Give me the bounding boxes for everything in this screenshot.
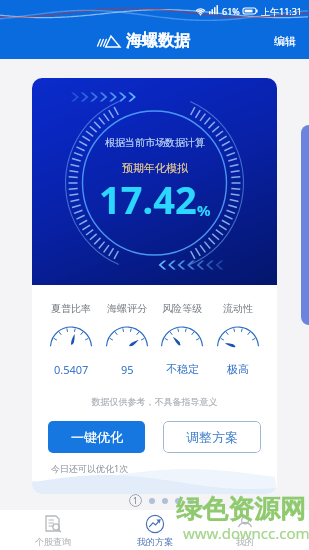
staticText: 根据当前市场数据计算 <box>105 136 205 149</box>
button[interactable]: 调整方案 <box>163 421 261 453</box>
staticText: 个股查询 <box>35 536 71 547</box>
staticText: 数据仅供参考，不具备指导意义 <box>32 396 277 407</box>
staticText: 绿色资源网 <box>176 493 306 526</box>
staticText: 风险等级 <box>162 302 202 315</box>
staticText: 我的方案 <box>137 536 173 547</box>
staticText: 上午11:31 <box>261 5 303 17</box>
staticText: www.downcc.com <box>183 523 309 543</box>
staticText: 95 <box>121 362 134 377</box>
button[interactable]: 编辑 <box>261 25 309 57</box>
staticText: 不稳定 <box>166 362 199 376</box>
button[interactable]: 个股查询 <box>17 510 89 550</box>
staticText: 夏普比率 <box>51 302 91 315</box>
staticText: 1 <box>133 495 138 506</box>
staticText: 17.42 <box>99 173 197 225</box>
staticText: 今日还可以优化1次 <box>51 462 129 474</box>
staticText: 调整方案 <box>186 429 238 445</box>
button[interactable]: 我的 <box>209 510 281 550</box>
staticText: 编辑 <box>274 34 296 48</box>
staticText: 0.5407 <box>54 362 89 377</box>
staticText: 海螺评分 <box>107 302 147 315</box>
staticText: % <box>197 200 211 220</box>
button[interactable]: 根据当前市场数据计算 <box>32 78 277 494</box>
staticText: 我的 <box>236 536 254 547</box>
button[interactable]: 我的方案 <box>119 510 191 550</box>
staticText: 海螺数据 <box>126 31 190 51</box>
staticText: 极高 <box>227 362 249 376</box>
staticText: 预期年化模拟 <box>122 161 188 175</box>
staticText: 一键优化 <box>71 429 123 445</box>
button[interactable]: 一键优化 <box>48 421 145 453</box>
staticText: 61% <box>222 5 240 17</box>
staticText: 流动性 <box>223 302 253 315</box>
